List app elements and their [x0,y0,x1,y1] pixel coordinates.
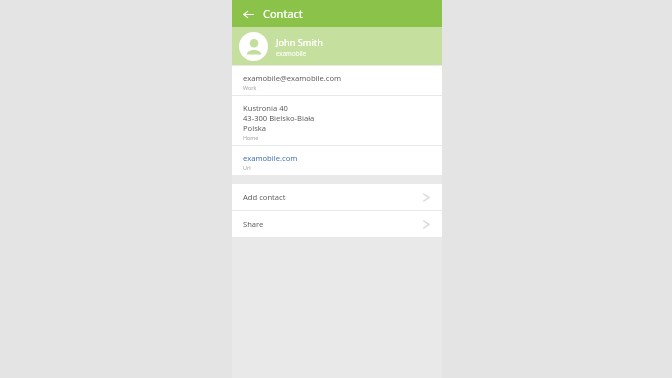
staticText: Add contact [243,192,420,202]
staticText: examobile.com [243,153,298,163]
staticText: 43-300 Bielsko-Biała [243,113,315,123]
staticText: Polska [243,123,267,133]
staticText: Share [243,219,420,229]
button[interactable]: Kustronia 40 [232,96,442,146]
staticText: Work [243,84,257,91]
staticText: Kustronia 40 [243,103,288,113]
staticText: Contact [263,6,303,21]
staticText: examobile [276,49,307,57]
staticText: Url [243,164,251,171]
staticText: Home [243,134,259,141]
button[interactable]: John Smith [232,27,442,65]
button[interactable]: Back [238,4,258,24]
button[interactable]: Add contact [232,184,442,210]
button[interactable]: examobile.com [232,146,442,175]
staticText: John Smith [276,36,323,49]
button[interactable]: examobile@examobile.com [232,66,442,96]
staticText: examobile@examobile.com [243,73,342,83]
button[interactable]: Share [232,211,442,237]
